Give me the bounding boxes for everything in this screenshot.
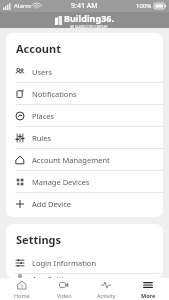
staticText: Add Device bbox=[32, 199, 72, 209]
staticText: Building36. bbox=[64, 12, 114, 24]
staticText: AN ALARM.COM COMPANY bbox=[70, 25, 108, 28]
staticText: 9:41 AM bbox=[71, 1, 98, 11]
button[interactable]: Manage Devices bbox=[6, 171, 163, 193]
button[interactable]: Places bbox=[6, 105, 163, 127]
button[interactable]: App Settings bbox=[6, 274, 163, 278]
button[interactable]: Users bbox=[6, 61, 163, 83]
button[interactable]: Account Management bbox=[6, 149, 163, 171]
button[interactable]: Video bbox=[43, 278, 85, 300]
staticText: 100% bbox=[136, 2, 152, 10]
button[interactable]: Add Device bbox=[6, 193, 163, 214]
button[interactable]: Activity bbox=[85, 278, 127, 300]
staticText: Manage Devices bbox=[32, 177, 90, 187]
staticText: Account Management bbox=[32, 155, 110, 165]
button[interactable]: Notifications bbox=[6, 83, 163, 105]
staticText: Video bbox=[57, 292, 72, 299]
staticText: More bbox=[141, 292, 156, 299]
staticText: Account bbox=[16, 41, 61, 56]
staticText: Login Information bbox=[32, 258, 97, 268]
staticText: App Settings bbox=[32, 274, 77, 278]
staticText: Home bbox=[14, 292, 30, 299]
staticText: Users bbox=[32, 67, 52, 77]
staticText: Settings bbox=[16, 232, 62, 247]
button[interactable]: Login Information bbox=[6, 252, 163, 274]
staticText: Notifications bbox=[32, 89, 77, 99]
button[interactable]: Rules bbox=[6, 127, 163, 149]
staticText: Places bbox=[32, 111, 55, 121]
staticText: Activity bbox=[97, 292, 116, 299]
button[interactable]: More bbox=[127, 278, 169, 300]
staticText: Alarm bbox=[14, 2, 31, 10]
button[interactable]: Home bbox=[0, 278, 43, 300]
staticText: Rules bbox=[32, 133, 52, 143]
